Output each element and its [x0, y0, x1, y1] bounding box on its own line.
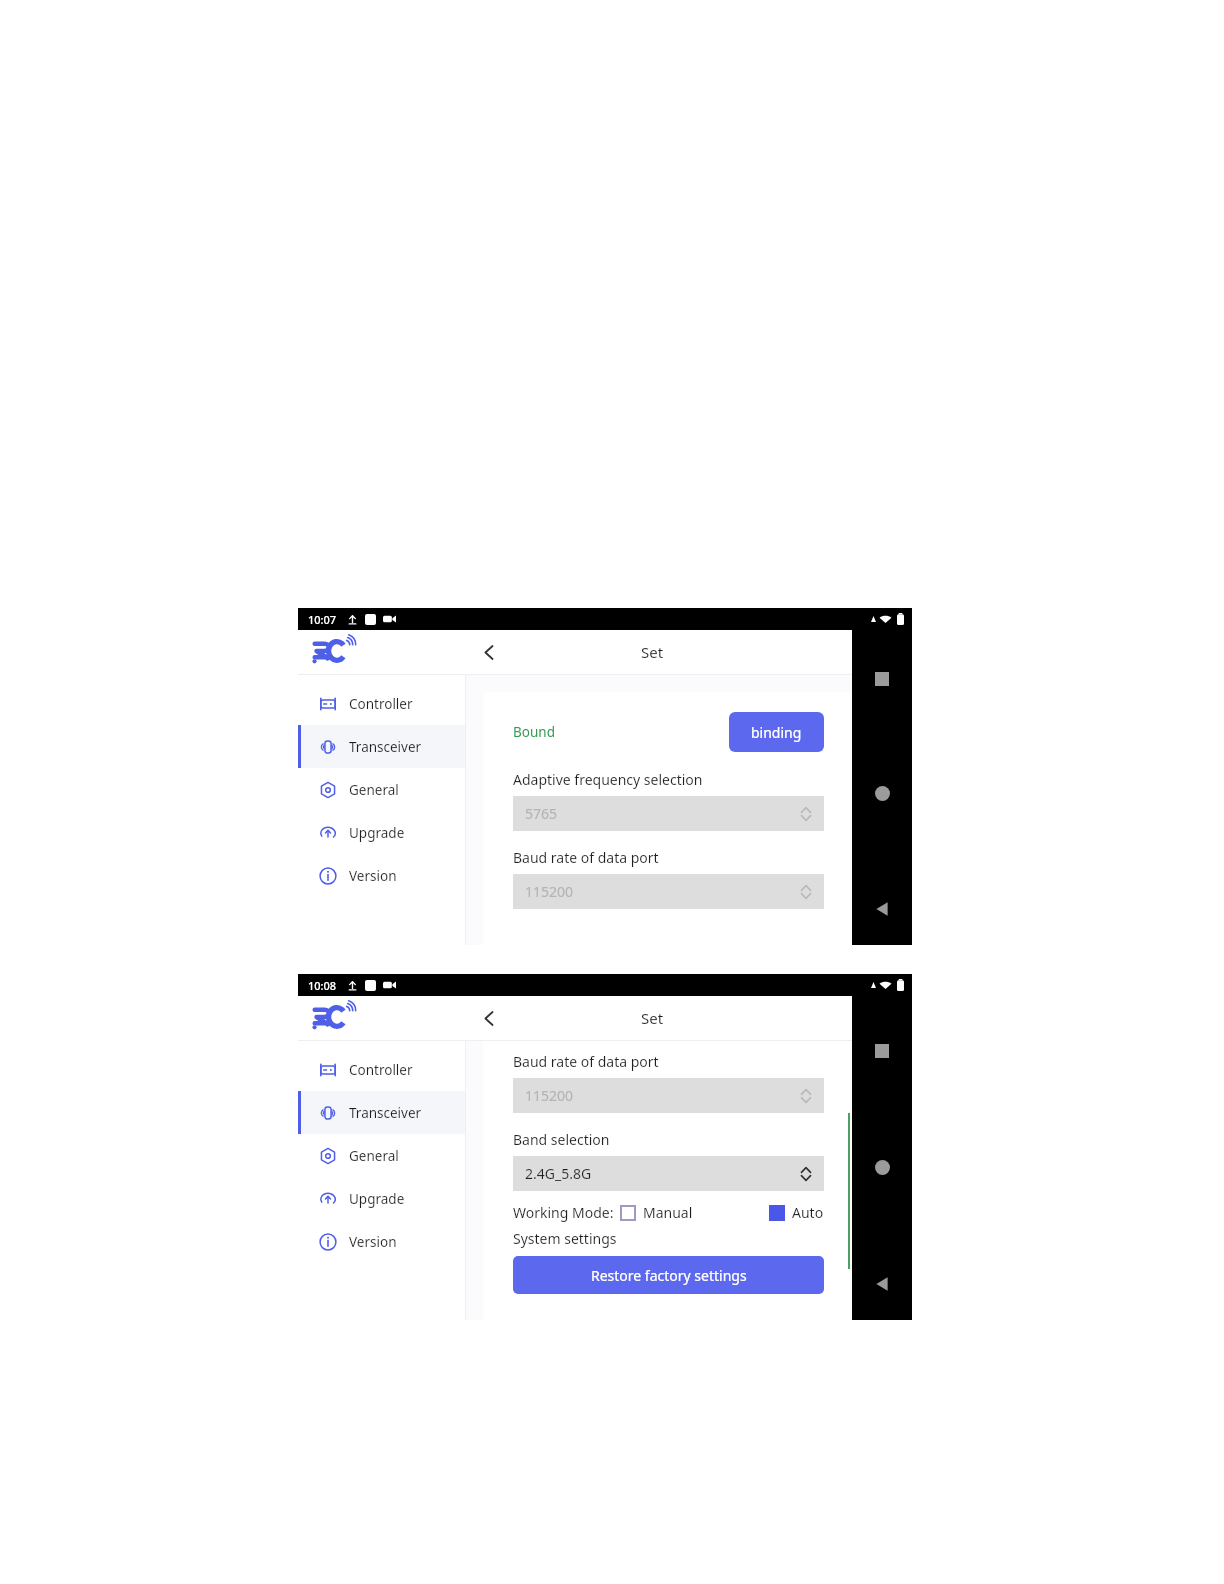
staticText: Upgrade — [349, 824, 405, 842]
staticText: Working Mode: — [513, 1203, 614, 1222]
button[interactable]: Back — [466, 630, 512, 674]
button[interactable]: Home — [875, 786, 890, 801]
staticText: Controller — [349, 1061, 413, 1079]
staticText: Adaptive frequency selection — [513, 770, 703, 789]
staticText: System settings — [513, 1229, 617, 1248]
button[interactable]: Transceiver — [298, 1091, 465, 1134]
staticText: Band selection — [513, 1130, 610, 1149]
staticText: 5765 — [525, 804, 558, 823]
staticText: 10:08 — [308, 978, 337, 993]
staticText: Restore factory settings — [591, 1266, 747, 1285]
staticText: Bound — [513, 723, 555, 741]
button[interactable]: binding — [729, 712, 824, 752]
staticText: General — [349, 1147, 399, 1165]
button[interactable]: Auto — [769, 1203, 824, 1222]
button[interactable]: Version — [298, 854, 465, 897]
button[interactable]: Transceiver — [298, 725, 465, 768]
staticText: Set — [641, 642, 664, 662]
staticText: Version — [349, 1233, 397, 1251]
button[interactable]: Back — [874, 901, 890, 917]
button[interactable]: Upgrade — [298, 1177, 465, 1220]
staticText: 115200 — [525, 882, 574, 901]
button[interactable]: General — [298, 768, 465, 811]
button[interactable]: Restore factory settings — [513, 1256, 824, 1294]
staticText: Transceiver — [349, 1104, 422, 1122]
button[interactable]: Version — [298, 1220, 465, 1263]
staticText: Baud rate of data port — [513, 1052, 659, 1071]
button[interactable]: Controller — [298, 682, 465, 725]
button[interactable]: Home — [875, 1160, 890, 1175]
staticText: Upgrade — [349, 1190, 405, 1208]
button[interactable]: Manual — [620, 1203, 693, 1222]
staticText: Transceiver — [349, 738, 422, 756]
staticText: Set — [641, 1008, 664, 1028]
button[interactable]: Controller — [298, 1048, 465, 1091]
staticText: 10:07 — [308, 612, 337, 627]
button[interactable]: Back — [466, 996, 512, 1040]
staticText: General — [349, 781, 399, 799]
staticText: Manual — [643, 1203, 693, 1222]
button[interactable]: Upgrade — [298, 811, 465, 854]
staticText: Version — [349, 867, 397, 885]
staticText: 2.4G_5.8G — [525, 1164, 592, 1183]
staticText: Baud rate of data port — [513, 848, 659, 867]
staticText: 115200 — [525, 1086, 574, 1105]
staticText: Auto — [792, 1203, 824, 1222]
staticText: Controller — [349, 695, 413, 713]
button[interactable]: Back — [874, 1276, 890, 1292]
staticText: binding — [751, 723, 802, 742]
button[interactable]: General — [298, 1134, 465, 1177]
